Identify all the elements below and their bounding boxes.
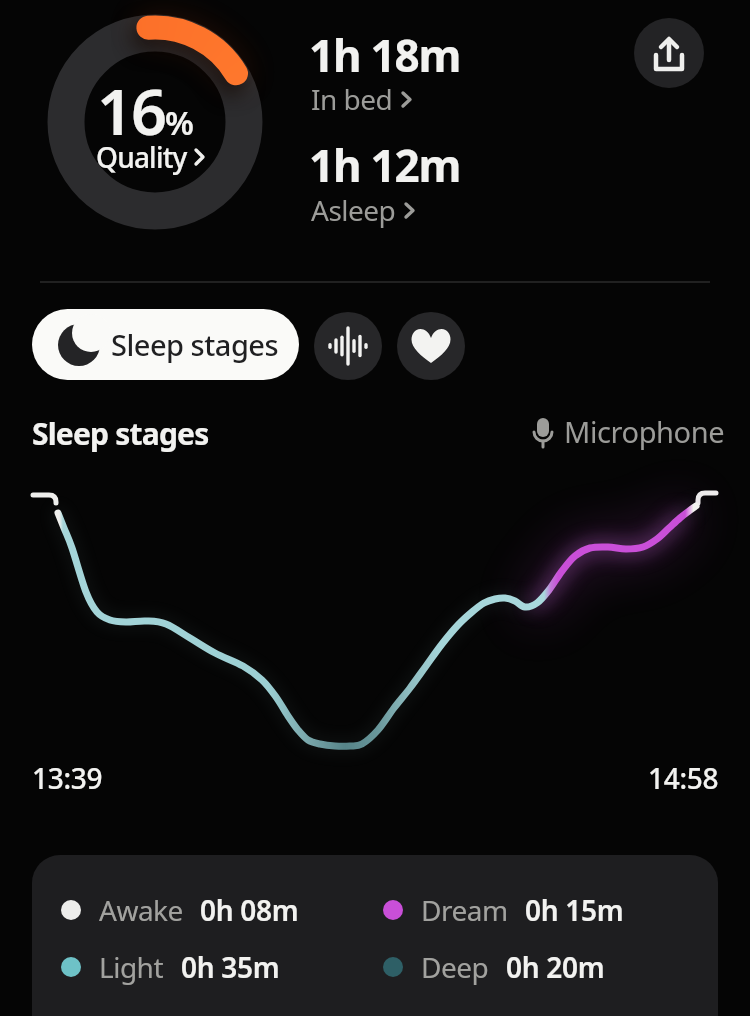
- button[interactable]: Dream: [383, 891, 624, 929]
- button[interactable]: [397, 312, 465, 380]
- staticText: Light: [99, 948, 164, 986]
- staticText: Dream: [421, 891, 508, 929]
- staticText: Awake: [99, 891, 183, 929]
- button[interactable]: Asleep: [311, 191, 415, 229]
- button[interactable]: [634, 18, 704, 88]
- staticText: 14:58: [648, 759, 719, 797]
- staticText: 13:39: [32, 759, 103, 797]
- staticText: 0h 20m: [506, 948, 605, 986]
- staticText: 1h 12m: [309, 135, 461, 195]
- staticText: 0h 35m: [181, 948, 280, 986]
- button[interactable]: In bed: [311, 80, 412, 118]
- staticText: Sleep stages: [111, 325, 279, 364]
- staticText: 0h 08m: [200, 891, 299, 929]
- button[interactable]: 16%: [45, 68, 245, 138]
- staticText: Asleep: [311, 191, 396, 229]
- button[interactable]: Deep: [383, 948, 605, 986]
- staticText: Sleep stages: [32, 413, 209, 454]
- button[interactable]: Microphone: [530, 412, 725, 451]
- button[interactable]: Sleep stages: [32, 309, 299, 380]
- staticText: 0h 15m: [525, 891, 624, 929]
- button[interactable]: Awake: [61, 891, 299, 929]
- staticText: In bed: [311, 80, 393, 118]
- staticText: 16%: [97, 68, 194, 138]
- staticText: Deep: [421, 948, 489, 986]
- staticText: Quality: [96, 138, 187, 176]
- button[interactable]: Light: [61, 948, 280, 986]
- button[interactable]: [314, 312, 382, 380]
- staticText: 1h 18m: [309, 25, 461, 85]
- staticText: Microphone: [564, 412, 725, 451]
